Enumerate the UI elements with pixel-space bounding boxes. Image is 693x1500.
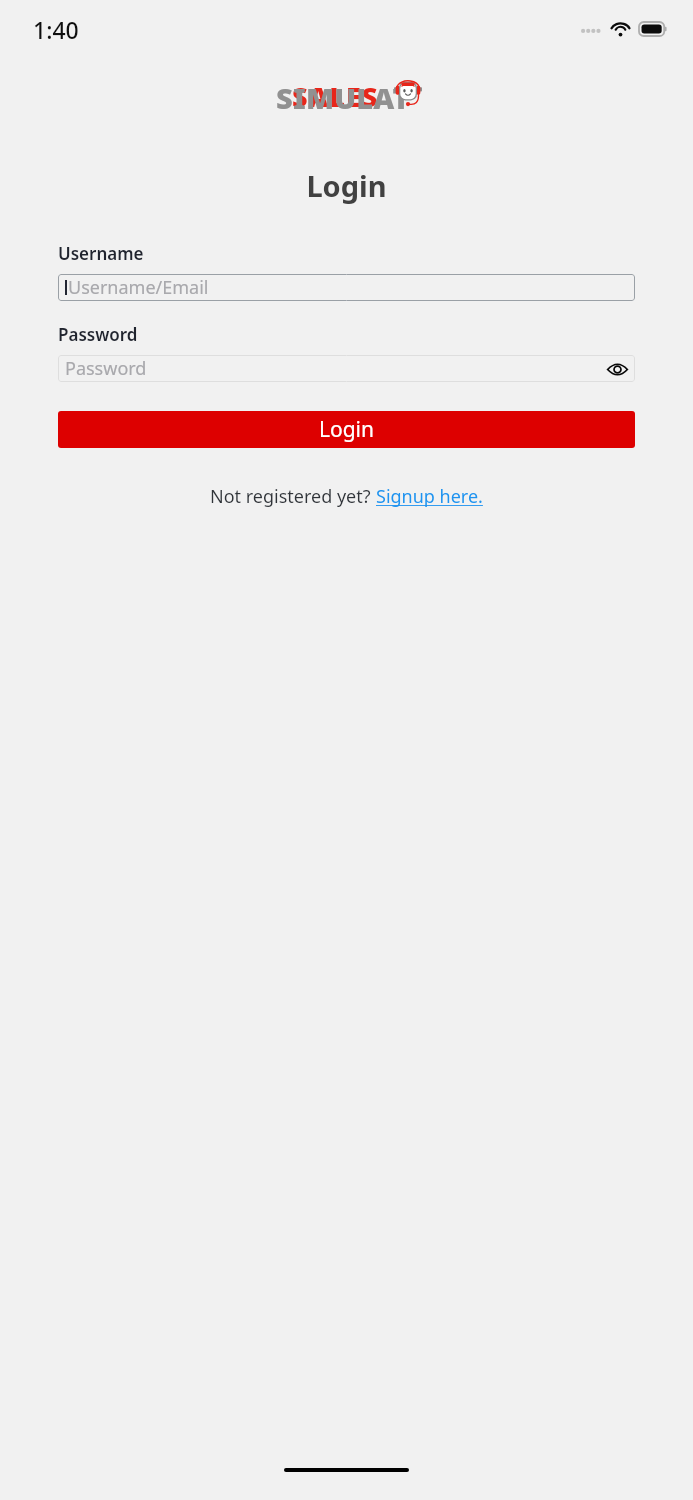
staticText: SIMULATOR [276,78,418,124]
button[interactable]: Signup here. [376,484,483,509]
staticText: SALES [292,78,379,115]
button[interactable]: Password [58,355,635,382]
staticText: Login [319,415,375,444]
staticText: Password [65,356,147,381]
staticText: Password [58,323,138,346]
button[interactable]: Login [58,411,635,448]
button[interactable]: Show password [605,357,629,381]
staticText: Login [0,166,693,205]
staticText: Signup here. [376,484,483,509]
staticText: Username/Email [68,275,209,300]
staticText: Username [58,242,144,265]
staticText: 1:40 [33,14,79,45]
staticText: Not registered yet? [210,484,376,509]
button[interactable]: Username/Email [58,274,635,301]
